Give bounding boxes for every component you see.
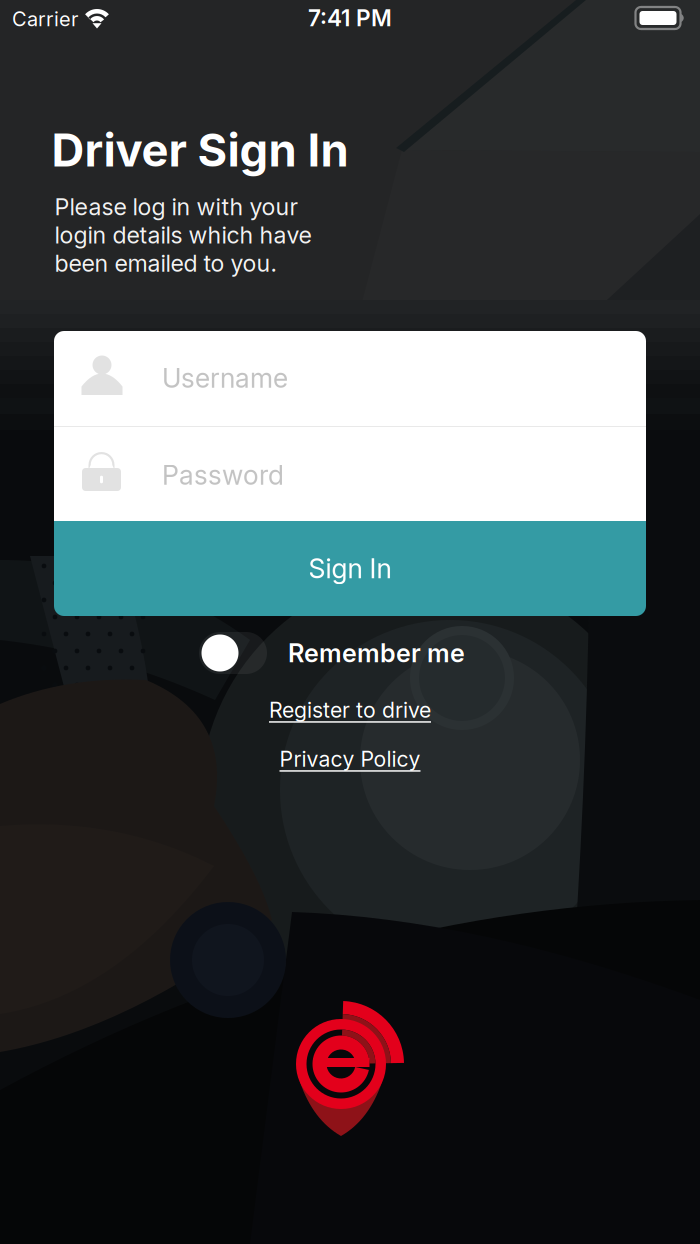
staticText: Password (162, 459, 284, 491)
button[interactable]: Remember me (199, 632, 465, 674)
staticText: Username (162, 362, 288, 394)
button[interactable]: Privacy Policy (250, 742, 450, 776)
button[interactable]: Register to drive (250, 693, 450, 727)
staticText: Privacy Policy (279, 746, 420, 772)
button[interactable]: Sign In (54, 521, 646, 616)
staticText: Register to drive (269, 697, 431, 723)
staticText: Remember me (288, 638, 465, 668)
staticText: Please log in with your login details wh… (54, 193, 311, 277)
staticText: Carrier (12, 7, 78, 31)
staticText: Driver Sign In (51, 123, 348, 177)
staticText: 7:41 PM (308, 4, 392, 32)
staticText: Sign In (308, 552, 391, 585)
